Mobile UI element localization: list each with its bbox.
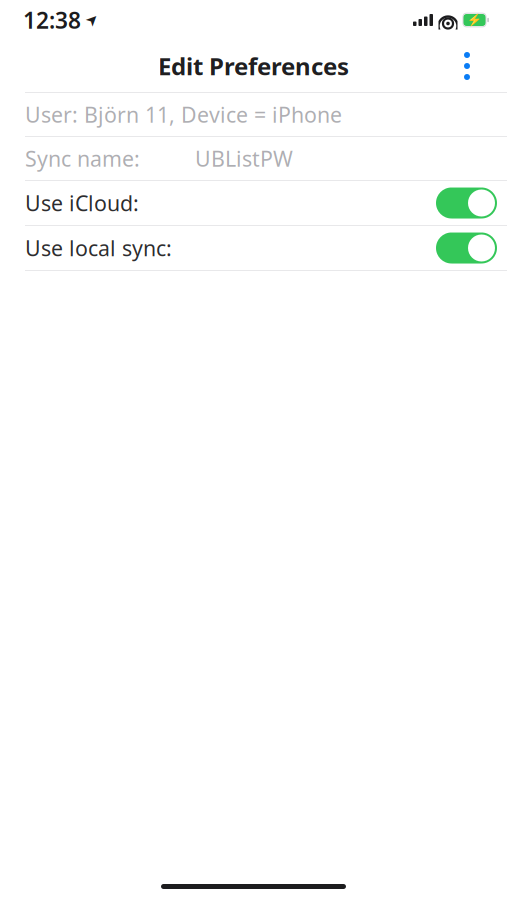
- staticText: ➤: [86, 12, 98, 28]
- staticText: User: Björn 11, Device = iPhone: [25, 100, 342, 129]
- staticText: 12:38: [23, 5, 81, 35]
- staticText: ⚡: [467, 13, 482, 27]
- button[interactable]: More options: [445, 44, 489, 88]
- button[interactable]: Use local sync:: [0, 226, 507, 270]
- staticText: Sync name:: [25, 144, 140, 173]
- staticText: UBListPW: [195, 144, 293, 173]
- staticText: Use local sync:: [25, 234, 172, 262]
- staticText: Use iCloud:: [25, 189, 139, 217]
- button[interactable]: Use iCloud:: [0, 181, 507, 225]
- staticText: Edit Preferences: [158, 50, 349, 82]
